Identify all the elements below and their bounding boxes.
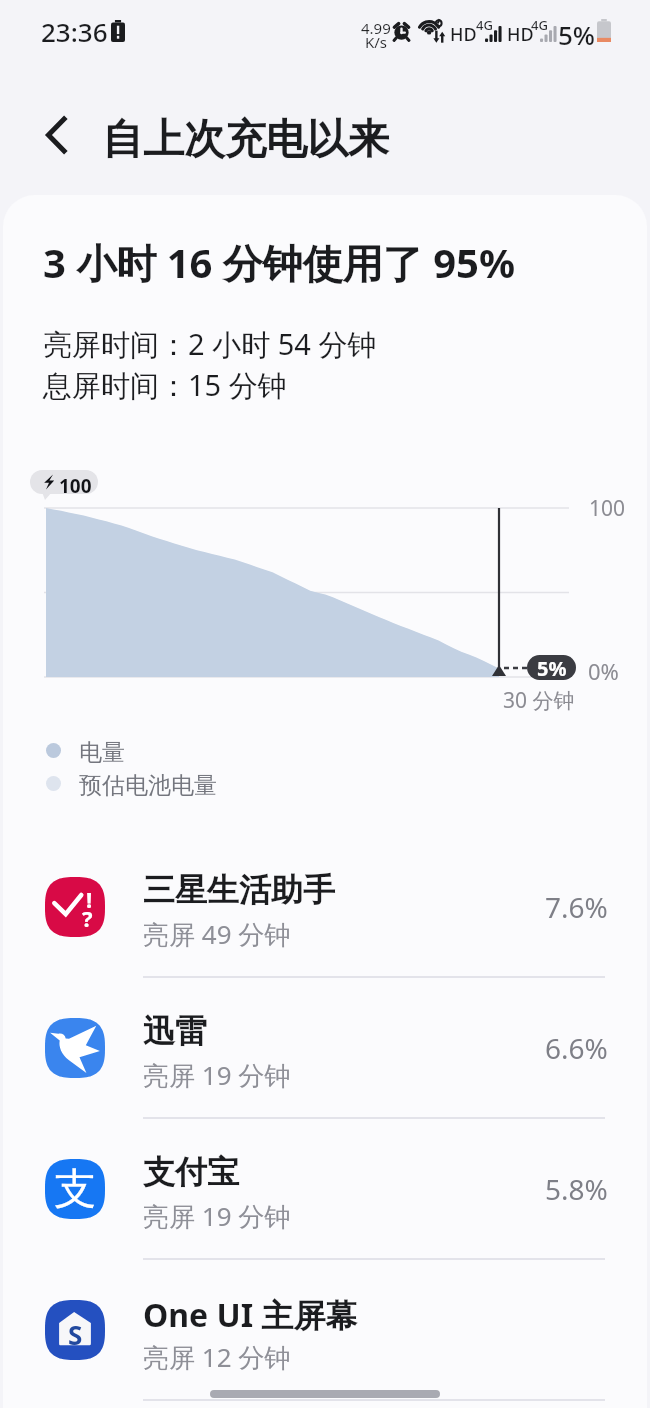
staticText: ? xyxy=(82,903,93,933)
staticText: 4G xyxy=(531,16,548,34)
staticText: S xyxy=(68,1317,83,1352)
button[interactable]: ! xyxy=(3,852,647,993)
staticText: 亮屏时间：2 小时 54 分钟 xyxy=(43,324,377,364)
staticText: 自上次充电以来 xyxy=(102,114,389,166)
staticText: 预估电池电量 xyxy=(79,771,217,800)
staticText: HD xyxy=(450,22,477,47)
button[interactable]: 支 xyxy=(3,1134,647,1275)
staticText: 3 小时 16 分钟使用了 95% xyxy=(43,235,516,290)
staticText: 亮屏 19 分钟 xyxy=(143,1057,291,1093)
staticText: 5.8% xyxy=(545,1170,608,1208)
button[interactable]: S xyxy=(3,1275,647,1408)
staticText: 4.99 xyxy=(361,18,391,38)
staticText: 支 xyxy=(54,1163,96,1216)
staticText: 23:36 xyxy=(41,14,108,49)
staticText: 100 xyxy=(589,494,626,523)
staticText: HD xyxy=(507,22,534,47)
staticText: One UI 主屏幕 xyxy=(143,1293,358,1337)
staticText: 息屏时间：15 分钟 xyxy=(43,365,287,405)
button[interactable]: Back xyxy=(32,111,80,159)
staticText: 支付宝 xyxy=(143,1152,239,1192)
staticText: 30 分钟 xyxy=(503,686,575,715)
staticText: 5% xyxy=(558,17,596,52)
staticText: 7.6% xyxy=(545,888,608,926)
staticText: 4G xyxy=(476,16,493,34)
staticText: 亮屏 49 分钟 xyxy=(143,916,291,952)
staticText: 三星生活助手 xyxy=(143,870,335,910)
staticText: K/s xyxy=(365,32,388,52)
staticText: 亮屏 12 分钟 xyxy=(143,1339,291,1375)
button[interactable]: 迅雷 xyxy=(3,993,647,1134)
staticText: 100 xyxy=(59,473,92,499)
staticText: 电量 xyxy=(79,738,125,767)
staticText: ! xyxy=(86,884,93,914)
staticText: 迅雷 xyxy=(143,1011,207,1051)
staticText: 亮屏 19 分钟 xyxy=(143,1198,291,1234)
staticText: 6.6% xyxy=(545,1029,608,1067)
staticText: 0% xyxy=(588,656,619,686)
staticText: 5% xyxy=(537,655,567,680)
